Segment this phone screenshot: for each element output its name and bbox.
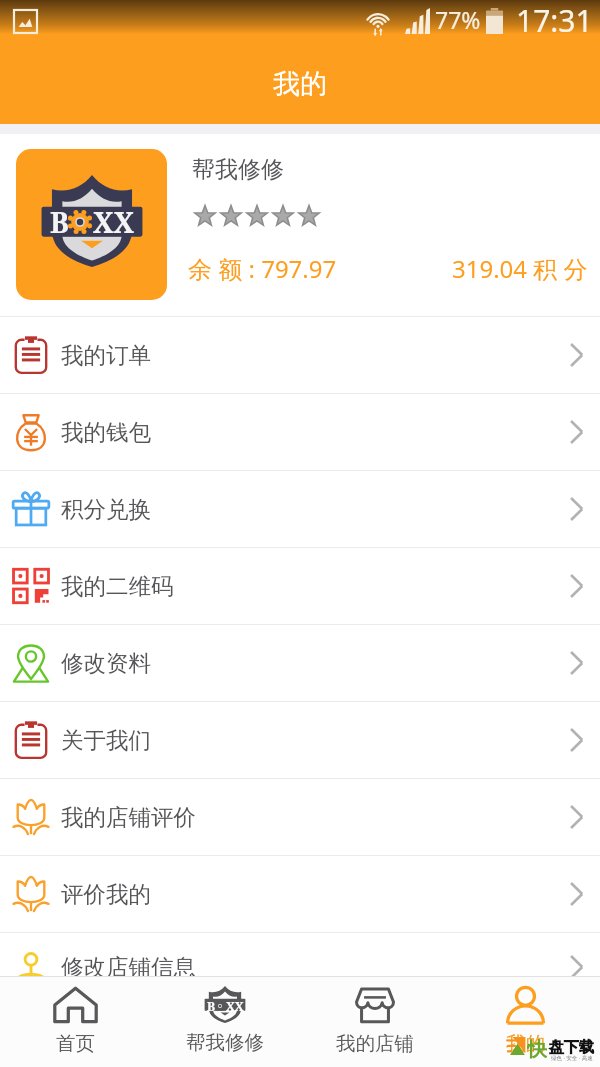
staticText: 积分兑换 [61, 495, 151, 523]
staticText: B [50, 203, 69, 241]
staticText: XX [226, 998, 244, 1014]
button[interactable]: 我的店铺 [300, 976, 450, 1067]
button[interactable]: 修改店铺信息 [0, 933, 600, 1000]
staticText: XX [93, 203, 135, 241]
staticText: 77% [435, 4, 481, 35]
button[interactable]: B [150, 976, 300, 1067]
staticText: 319.04 积 分 [452, 252, 588, 285]
button[interactable]: 我的二维码 [0, 548, 600, 624]
button[interactable]: 我的 [450, 976, 600, 1067]
button[interactable]: 我的订单 [0, 317, 600, 393]
staticText: 我的 [506, 1031, 545, 1056]
staticText: 我的 [273, 67, 327, 101]
staticText: 余 额 : 797.97 [188, 252, 337, 285]
staticText: 帮我修修 [186, 1030, 264, 1055]
staticText: 我的店铺评价 [61, 803, 196, 831]
staticText: 绿色 · 安全 · 高速 [551, 1054, 593, 1062]
staticText: 快 [527, 1037, 547, 1061]
button[interactable]: 首页 [0, 976, 150, 1067]
staticText: 我的订单 [61, 341, 151, 369]
button[interactable]: 我的店铺评价 [0, 779, 600, 855]
staticText: 我的店铺 [336, 1031, 414, 1056]
staticText: 修改资料 [61, 649, 151, 677]
button[interactable]: B [0, 134, 600, 316]
button[interactable]: 积分兑换 [0, 471, 600, 547]
staticText: 首页 [56, 1031, 95, 1056]
staticText: 帮我修修 [192, 155, 284, 184]
staticText: 关于我们 [61, 726, 151, 754]
staticText: 17:31 [516, 0, 593, 41]
button[interactable]: 我的钱包 [0, 394, 600, 470]
staticText: 修改店铺信息 [61, 953, 196, 981]
staticText: B [207, 998, 216, 1014]
staticText: 我的钱包 [61, 418, 151, 446]
staticText: 评价我的 [61, 880, 151, 908]
button[interactable]: 修改资料 [0, 625, 600, 701]
button[interactable]: 评价我的 [0, 856, 600, 932]
staticText: 盘下载 [549, 1038, 594, 1057]
button[interactable]: 关于我们 [0, 702, 600, 778]
staticText: 我的二维码 [61, 572, 174, 600]
